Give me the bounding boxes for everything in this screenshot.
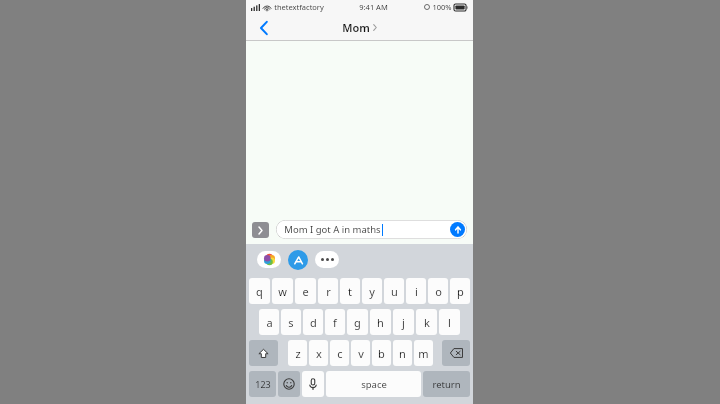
button[interactable]: g <box>347 309 368 335</box>
button[interactable]: a <box>259 309 279 335</box>
button[interactable]: o <box>428 278 448 304</box>
button[interactable]: n <box>393 340 412 366</box>
button[interactable]: Shift <box>249 340 278 366</box>
button[interactable]: Photos <box>257 251 281 268</box>
button[interactable]: i <box>406 278 426 304</box>
button[interactable]: s <box>281 309 301 335</box>
staticText: space <box>361 378 387 391</box>
button[interactable]: Mom <box>342 20 377 35</box>
staticText: s <box>288 315 294 330</box>
staticText: i <box>415 284 418 299</box>
button[interactable]: Send <box>450 222 465 237</box>
staticText: z <box>295 346 301 361</box>
button[interactable]: r <box>318 278 338 304</box>
button[interactable]: p <box>450 278 470 304</box>
staticText: b <box>378 346 385 361</box>
staticText: 123 <box>255 378 271 390</box>
staticText: q <box>256 284 263 299</box>
button[interactable]: App Store <box>288 250 308 270</box>
staticText: d <box>310 315 317 330</box>
staticText: f <box>333 315 337 330</box>
button[interactable]: z <box>288 340 307 366</box>
staticText: r <box>326 284 331 299</box>
staticText: 9:41 AM <box>359 2 388 12</box>
button[interactable]: More apps <box>315 251 339 268</box>
staticText: m <box>418 346 429 361</box>
button[interactable]: d <box>303 309 323 335</box>
button[interactable]: space <box>326 371 421 397</box>
button[interactable]: m <box>414 340 433 366</box>
staticText: thetextfactory <box>274 2 324 12</box>
staticText: y <box>369 284 375 299</box>
staticText: Mom I got A in maths <box>284 223 381 236</box>
button[interactable]: k <box>416 309 437 335</box>
button[interactable]: l <box>439 309 460 335</box>
button[interactable]: c <box>330 340 349 366</box>
button[interactable]: Emoji <box>278 371 300 397</box>
button[interactable]: Dictation <box>302 371 324 397</box>
staticText: u <box>391 284 398 299</box>
staticText: n <box>399 346 406 361</box>
button[interactable]: j <box>393 309 414 335</box>
staticText: Mom <box>342 20 370 35</box>
staticText: a <box>266 315 273 330</box>
staticText: x <box>316 346 322 361</box>
staticText: v <box>358 346 364 361</box>
button[interactable]: y <box>362 278 382 304</box>
button[interactable]: v <box>351 340 370 366</box>
staticText: w <box>278 284 287 299</box>
button[interactable]: t <box>340 278 360 304</box>
staticText: g <box>354 315 361 330</box>
staticText: e <box>302 284 309 299</box>
button[interactable]: w <box>272 278 293 304</box>
staticText: return <box>432 378 461 391</box>
button[interactable]: Delete <box>442 340 470 366</box>
staticText: h <box>377 315 384 330</box>
staticText: c <box>337 346 343 361</box>
staticText: 100% <box>432 2 452 12</box>
button[interactable]: f <box>325 309 345 335</box>
button[interactable]: b <box>372 340 391 366</box>
staticText: l <box>448 315 451 330</box>
button[interactable]: Back <box>254 18 274 38</box>
button[interactable]: 123 <box>249 371 276 397</box>
button[interactable]: e <box>295 278 316 304</box>
button[interactable]: x <box>309 340 328 366</box>
button[interactable]: return <box>423 371 470 397</box>
button[interactable]: q <box>249 278 270 304</box>
button[interactable]: h <box>370 309 391 335</box>
staticText: k <box>424 315 430 330</box>
staticText: t <box>348 284 352 299</box>
staticText: j <box>402 315 405 330</box>
button[interactable]: u <box>384 278 404 304</box>
staticText: p <box>457 284 464 299</box>
staticText: o <box>435 284 442 299</box>
button[interactable]: Show apps <box>252 222 269 238</box>
button[interactable]: Mom I got A in maths <box>276 220 467 239</box>
